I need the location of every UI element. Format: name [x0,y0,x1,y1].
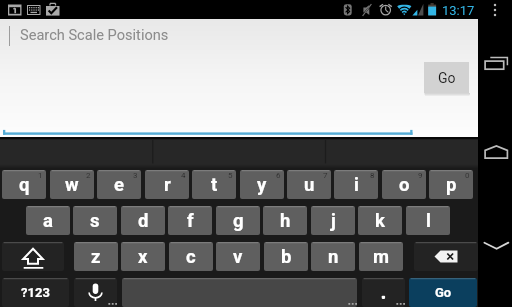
staticText: a [43,210,53,232]
button[interactable]: Recent apps [478,26,512,104]
staticText: f [187,210,194,232]
staticText: b [281,246,292,268]
button[interactable]: e [97,170,141,199]
staticText: k [375,210,385,232]
button[interactable]: q [2,170,46,199]
staticText: l [426,210,431,232]
button[interactable]: Voice input [74,278,117,307]
staticText: Go [438,70,456,86]
button[interactable]: Shift [2,242,64,271]
staticText: d [138,210,149,232]
staticText: q [19,174,30,196]
staticText: n [328,246,339,268]
staticText: j [331,210,336,232]
button[interactable]: Go [409,278,477,307]
button[interactable]: h [263,206,307,235]
button[interactable]: a [26,206,70,235]
staticText: s [90,210,100,232]
button[interactable]: Backspace [414,242,478,271]
button[interactable] [362,278,405,307]
button[interactable]: Home [478,114,512,192]
button[interactable]: Back [478,206,512,284]
staticText: e [114,174,124,196]
staticText: 2 [86,171,91,180]
button[interactable]: ?123 [2,278,69,307]
button[interactable]: u [287,170,331,199]
staticText: 1 [38,171,43,180]
staticText: 3 [133,171,138,180]
button[interactable]: y [240,170,284,199]
staticText: 9 [418,171,423,180]
staticText: w [65,174,79,196]
button[interactable]: m [359,242,403,271]
button[interactable]: g [216,206,260,235]
button[interactable]: z [74,242,118,271]
staticText: ?123 [21,285,50,300]
button[interactable]: j [311,206,355,235]
staticText: 13:17 [442,3,475,18]
button[interactable]: p [429,170,473,199]
staticText: m [373,246,390,268]
staticText: x [138,246,148,268]
staticText: u [304,174,315,196]
staticText: i [354,174,359,196]
staticText: c [186,246,196,268]
staticText: v [233,246,243,268]
button[interactable]: c [169,242,213,271]
button[interactable]: Go [424,62,469,93]
staticText: Search Scale Positions [20,26,169,43]
button[interactable]: w [50,170,94,199]
staticText: y [257,174,267,196]
button[interactable]: b [264,242,308,271]
button[interactable]: l [406,206,450,235]
staticText: 4 [181,171,186,180]
button[interactable]: i [334,170,378,199]
staticText: 0 [465,171,470,180]
button[interactable]: d [121,206,165,235]
staticText: z [91,246,101,268]
button[interactable]: v [216,242,260,271]
button[interactable]: r [145,170,189,199]
staticText: o [399,174,410,196]
button[interactable]: n [311,242,355,271]
staticText: p [446,174,457,196]
staticText: t [211,174,218,196]
button[interactable]: f [168,206,212,235]
button[interactable]: s [73,206,117,235]
staticText: g [233,210,244,232]
staticText: Go [435,285,452,300]
button[interactable]: x [121,242,165,271]
staticText: r [164,174,171,196]
staticText: 6 [276,171,281,180]
staticText: 7 [323,171,328,180]
button[interactable]: More options [488,0,502,20]
button[interactable]: k [358,206,402,235]
staticText: 8 [370,171,375,180]
staticText: h [280,210,291,232]
button[interactable]: Space [122,278,357,307]
button[interactable]: t [192,170,236,199]
staticText: 5 [228,171,233,180]
button[interactable]: o [382,170,426,199]
